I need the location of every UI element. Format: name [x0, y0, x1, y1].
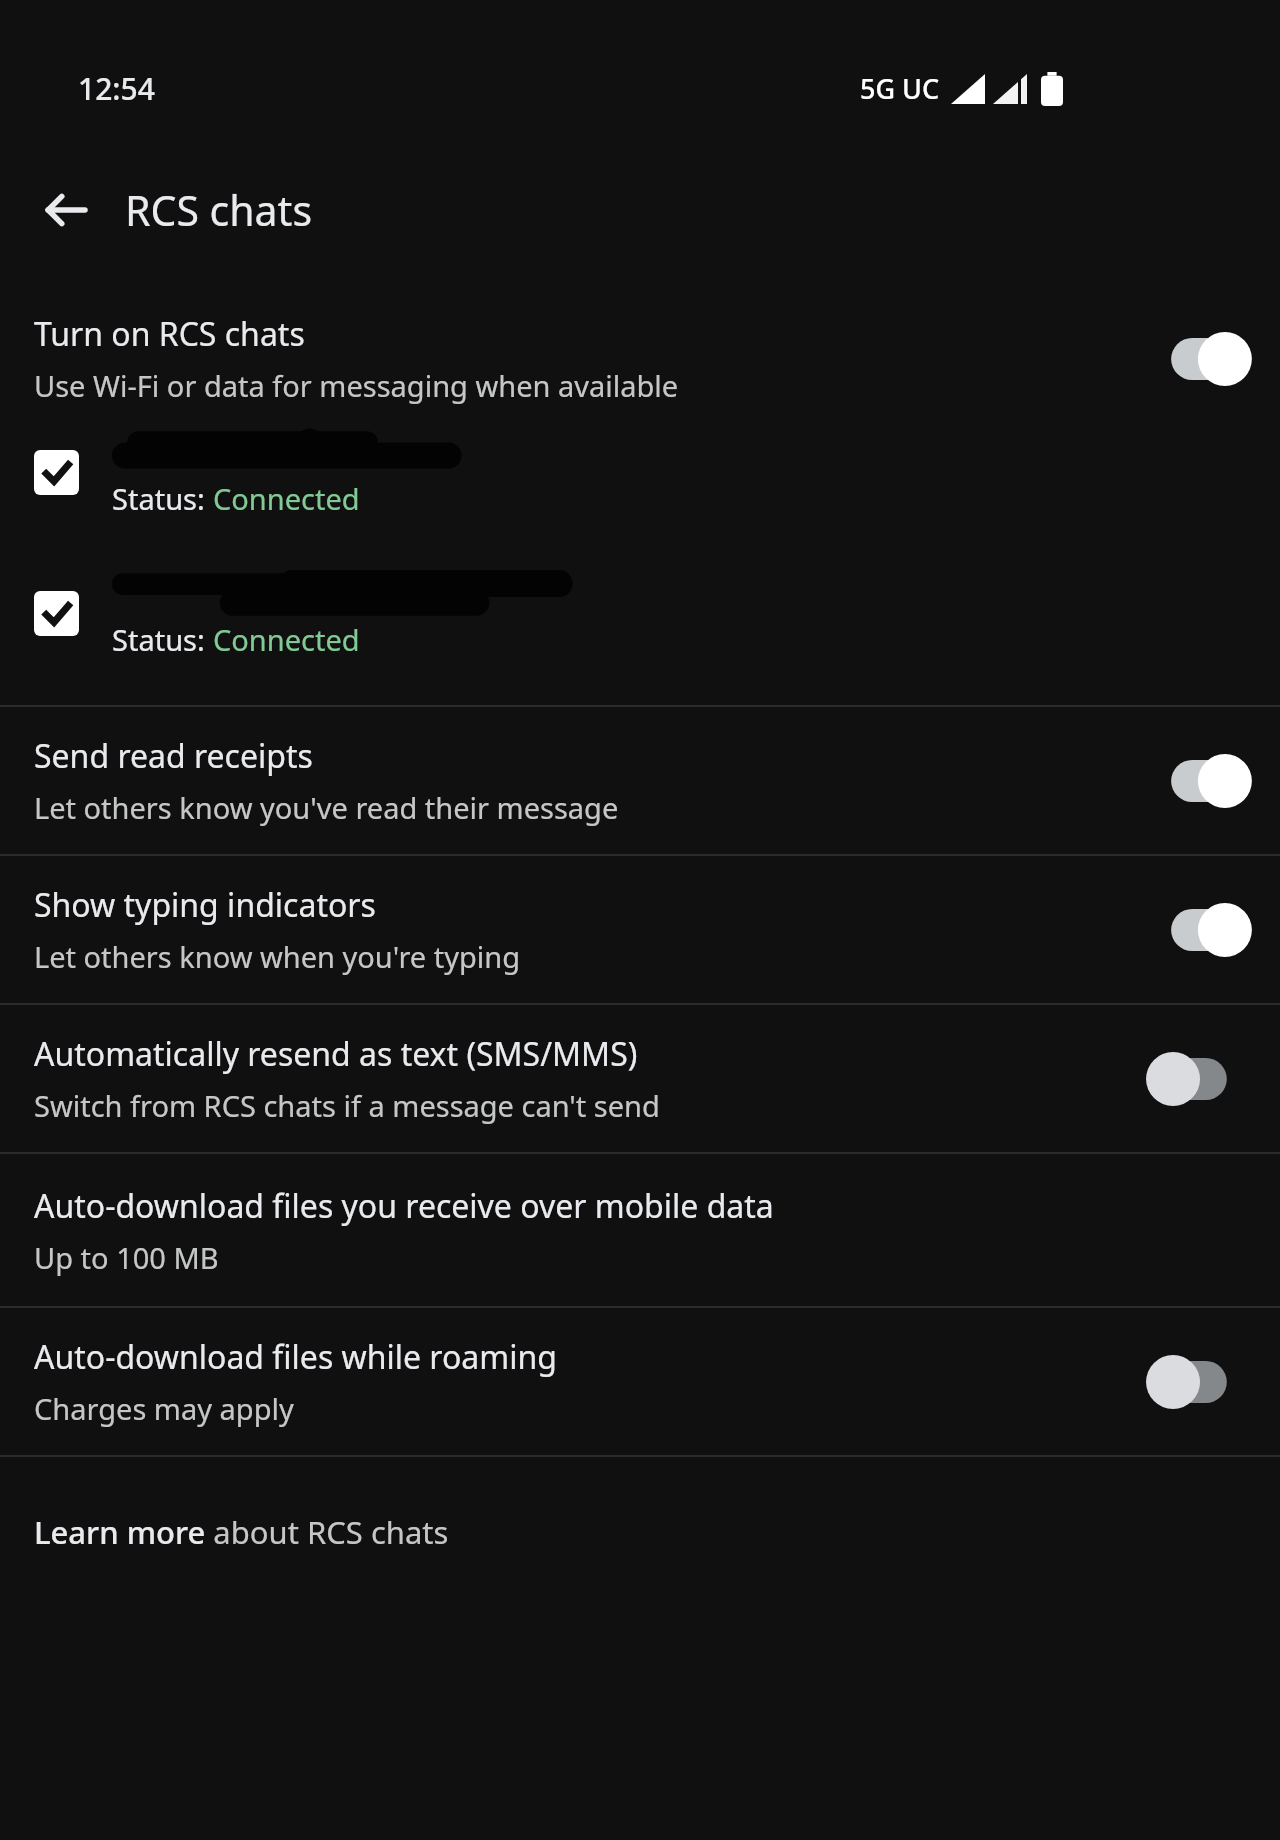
button[interactable]: Show typing indicators [0, 856, 1280, 1003]
staticText: Switch from RCS chats if a message can't… [34, 1086, 660, 1125]
staticText: Charges may apply [34, 1389, 294, 1428]
staticText: Auto-download files you receive over mob… [34, 1184, 774, 1228]
staticText: Show typing indicators [34, 883, 376, 927]
button[interactable]: Back [34, 179, 96, 241]
button[interactable]: Off [1150, 1044, 1246, 1114]
staticText: Auto-download files while roaming [34, 1335, 557, 1379]
button[interactable]: Send read receipts [0, 707, 1280, 854]
button[interactable]: Auto-download files while roaming [0, 1308, 1280, 1455]
other: Enabled [34, 450, 79, 495]
button[interactable]: Auto-download files you receive over mob… [0, 1154, 1280, 1306]
button[interactable]: On [1150, 746, 1246, 816]
staticText: Send read receipts [34, 734, 313, 778]
button[interactable]: Turn on RCS chats [0, 312, 1280, 405]
button[interactable]: Enabled [0, 568, 1280, 659]
staticText: Connected [213, 620, 360, 659]
button[interactable]: Learn more about RCS chats [0, 1457, 1280, 1607]
button[interactable]: Off [1150, 1347, 1246, 1417]
staticText: Learn more about RCS chats [34, 1511, 449, 1553]
staticText: Let others know when you're typing [34, 937, 521, 976]
button[interactable]: Enabled [0, 427, 1280, 518]
staticText: 5G UC [860, 70, 940, 107]
staticText: 12:54 [78, 68, 155, 109]
staticText: Status: [112, 479, 213, 518]
staticText: Up to 100 MB [34, 1238, 219, 1277]
staticText: Use Wi-Fi or data for messaging when ava… [34, 366, 679, 405]
button[interactable]: Back [0, 150, 1280, 270]
staticText: Connected [213, 479, 360, 518]
button[interactable]: Automatically resend as text (SMS/MMS) [0, 1005, 1280, 1152]
staticText: Turn on RCS chats [34, 312, 305, 356]
button[interactable]: On [1150, 324, 1246, 394]
staticText: Status: [112, 620, 213, 659]
staticText: Automatically resend as text (SMS/MMS) [34, 1032, 638, 1076]
button[interactable]: On [1150, 895, 1246, 965]
staticText: Let others know you've read their messag… [34, 788, 619, 827]
staticText: RCS chats [125, 182, 313, 238]
other: Enabled [34, 591, 79, 636]
